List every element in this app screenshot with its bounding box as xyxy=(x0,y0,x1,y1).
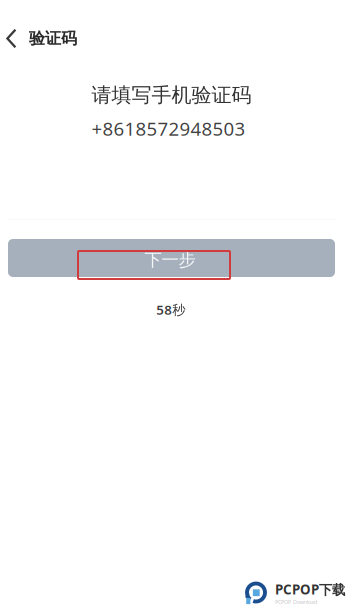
staticText: PCPOP下载 xyxy=(275,581,345,598)
staticText: PCPOP Download xyxy=(275,598,317,605)
button[interactable]: 验证码 xyxy=(0,18,104,58)
staticText: 58秒 xyxy=(156,301,185,318)
staticText: 验证码 xyxy=(29,29,77,48)
button[interactable]: 下一步 xyxy=(8,239,335,277)
staticText: 请填写手机验证码 xyxy=(91,83,251,107)
staticText: 下一步 xyxy=(144,249,195,271)
staticText: +8618572948503 xyxy=(91,116,245,141)
